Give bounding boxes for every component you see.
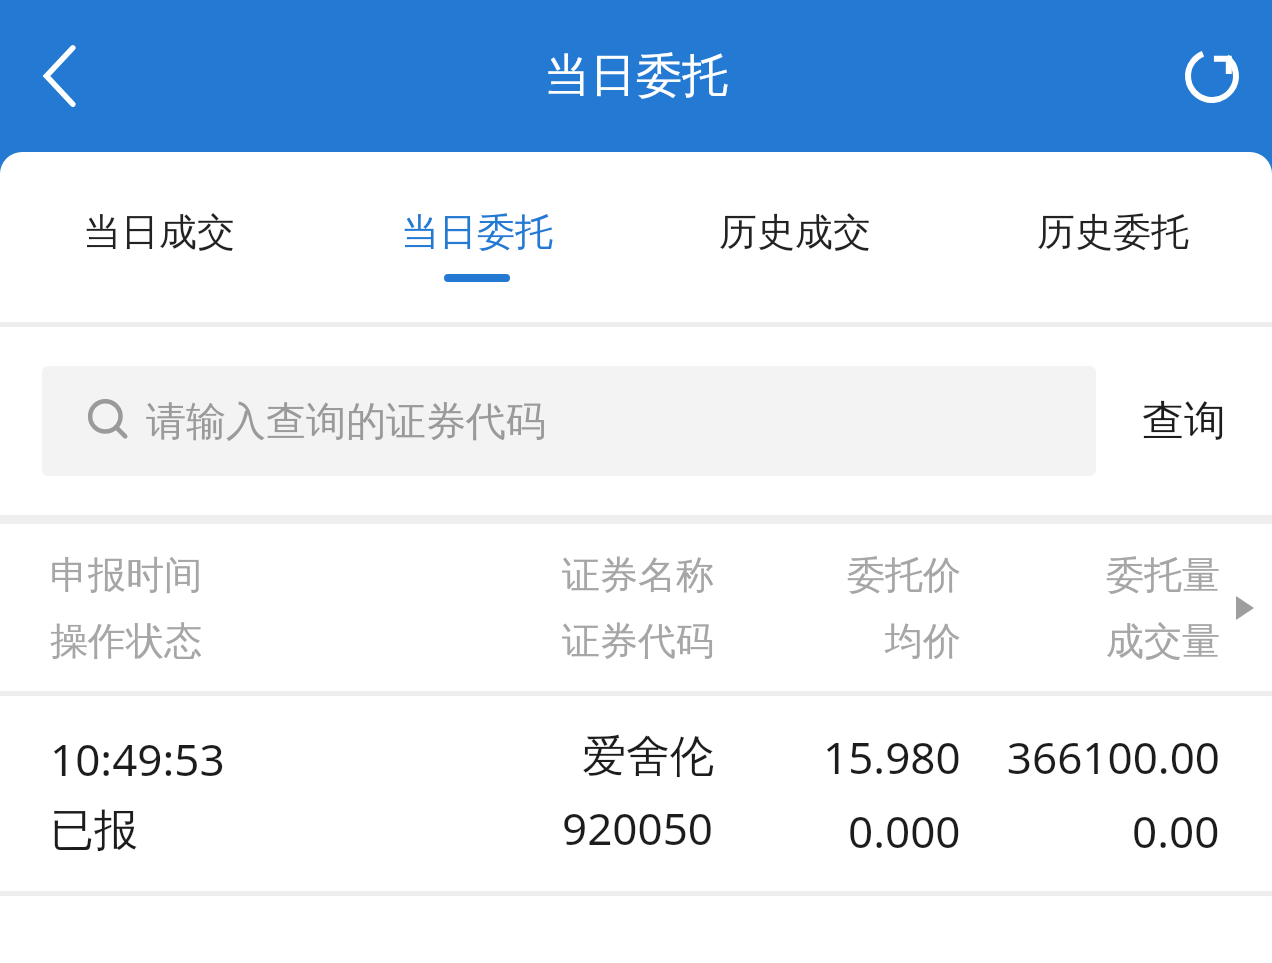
button[interactable]: 当日成交	[0, 152, 318, 322]
staticText: 0.00	[1132, 801, 1220, 861]
button[interactable]: Back	[12, 28, 108, 124]
staticText: 当日委托	[544, 47, 728, 105]
button[interactable]: 当日委托	[318, 152, 636, 322]
button[interactable]: Scroll right	[1232, 593, 1258, 623]
staticText: 查询	[1142, 395, 1226, 448]
staticText: 920050	[562, 798, 714, 858]
staticText: 证券名称	[562, 551, 714, 599]
button[interactable]: Refresh	[1164, 28, 1260, 124]
button[interactable]: 历史委托	[954, 152, 1272, 322]
staticText: 成交量	[1106, 617, 1220, 665]
staticText: 当日委托	[401, 208, 553, 256]
staticText: 爱舍伦	[582, 729, 714, 784]
staticText: 0.000	[848, 801, 961, 861]
staticText: 历史委托	[1037, 208, 1189, 256]
button[interactable]: 历史成交	[636, 152, 954, 322]
staticText: 已报	[50, 803, 138, 858]
staticText: 10:49:53	[50, 729, 225, 789]
staticText: 366100.00	[1006, 727, 1220, 787]
staticText: 委托价	[847, 551, 961, 599]
button[interactable]: 请输入查询的证券代码	[42, 366, 1096, 476]
staticText: 委托量	[1106, 551, 1220, 599]
staticText: 申报时间	[50, 551, 202, 599]
staticText: 均价	[885, 617, 961, 665]
staticText: 15.980	[823, 727, 961, 787]
staticText: 证券代码	[562, 617, 714, 665]
button[interactable]: 10:49:53	[0, 696, 1272, 891]
staticText: 请输入查询的证券代码	[146, 396, 546, 446]
button[interactable]: 查询	[1096, 366, 1272, 476]
staticText: 操作状态	[50, 617, 202, 665]
staticText: 当日成交	[83, 208, 235, 256]
staticText: 历史成交	[719, 208, 871, 256]
